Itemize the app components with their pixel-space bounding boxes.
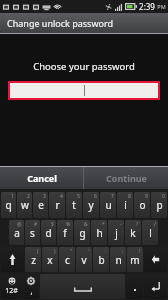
button[interactable]: Cancel: [0, 167, 83, 189]
staticText: ': [88, 248, 90, 255]
staticText: e: [38, 198, 44, 212]
staticText: x: [47, 253, 53, 267]
button[interactable]: [8, 81, 160, 100]
button[interactable]: r: [49, 192, 65, 218]
button[interactable]: u: [100, 192, 116, 218]
button[interactable]: t: [66, 192, 82, 218]
staticText: 7: [111, 193, 114, 200]
button[interactable]: e: [33, 192, 48, 218]
staticText: d: [45, 226, 52, 240]
staticText: y: [88, 198, 94, 212]
staticText: a: [14, 226, 20, 240]
staticText: (: [37, 248, 39, 255]
button[interactable]: Space: [40, 274, 125, 299]
staticText: 6: [94, 193, 97, 200]
staticText: 12#: [5, 286, 18, 296]
button[interactable]: v: [76, 247, 92, 272]
button[interactable]: Symbols and emoji: [1, 274, 21, 299]
staticText: !: [139, 248, 141, 255]
button[interactable]: s: [25, 220, 40, 245]
staticText: Continue: [106, 172, 147, 184]
staticText: ?: [136, 221, 139, 228]
staticText: g: [79, 226, 86, 240]
staticText: Change unlock password: [7, 17, 113, 29]
button[interactable]: o: [134, 192, 150, 218]
staticText: 1: [11, 193, 14, 200]
button[interactable]: l: [142, 220, 158, 245]
button[interactable]: Enter: [144, 274, 167, 299]
button[interactable]: Keyboard settings: [22, 274, 39, 299]
button[interactable]: h: [91, 220, 107, 245]
staticText: 5: [77, 193, 80, 200]
staticText: z: [31, 253, 36, 267]
button[interactable]: d: [41, 220, 56, 245]
staticText: 4: [60, 193, 63, 200]
staticText: k: [130, 226, 136, 240]
staticText: j: [115, 226, 118, 240]
staticText: h: [96, 226, 103, 240]
staticText: :: [105, 248, 107, 255]
staticText: -: [120, 221, 122, 228]
staticText: p: [156, 198, 163, 212]
staticText: c: [65, 253, 70, 267]
staticText: u: [105, 198, 112, 212]
button[interactable]: j: [108, 220, 124, 245]
staticText: ;: [122, 248, 124, 255]
staticText: ,: [30, 285, 33, 296]
staticText: 8: [128, 193, 131, 200]
button[interactable]: k: [125, 220, 141, 245]
staticText: #: [34, 221, 38, 228]
button[interactable]: i: [117, 192, 133, 218]
staticText: 0: [162, 193, 165, 200]
button[interactable]: [126, 274, 143, 299]
button[interactable]: Continue: [84, 167, 168, 189]
staticText: Cancel: [27, 172, 57, 184]
button[interactable]: q: [1, 192, 16, 218]
staticText: PM: [157, 3, 166, 10]
staticText: ): [54, 248, 56, 255]
staticText: 2: [27, 193, 30, 200]
staticText: 2:39: [139, 1, 155, 12]
staticText: 3: [43, 193, 46, 200]
staticText: *: [102, 221, 105, 228]
staticText: r: [55, 198, 60, 212]
button[interactable]: w: [17, 192, 32, 218]
button[interactable]: g: [74, 220, 90, 245]
staticText: $: [51, 221, 54, 228]
button[interactable]: n: [110, 247, 126, 272]
staticText: %: [66, 221, 71, 228]
staticText: /: [154, 221, 156, 228]
staticText: Choose your password: [33, 60, 135, 73]
staticText: i: [124, 198, 127, 212]
staticText: q: [5, 198, 12, 212]
button[interactable]: a: [9, 220, 24, 245]
staticText: w: [21, 198, 29, 212]
staticText: l: [149, 226, 152, 240]
staticText: 9: [145, 193, 148, 200]
button[interactable]: p: [151, 192, 167, 218]
button[interactable]: c: [59, 247, 75, 272]
button[interactable]: y: [83, 192, 99, 218]
staticText: b: [98, 253, 105, 267]
button[interactable]: Backspace: [144, 247, 167, 272]
staticText: @: [17, 221, 22, 228]
staticText: ": [70, 248, 73, 255]
staticText: f: [63, 226, 67, 240]
button[interactable]: x: [42, 247, 58, 272]
staticText: s: [30, 226, 35, 240]
staticText: o: [139, 198, 146, 212]
button[interactable]: b: [93, 247, 109, 272]
button[interactable]: m: [127, 247, 143, 272]
staticText: t: [72, 198, 76, 212]
button[interactable]: Shift: [1, 247, 24, 272]
staticText: m: [130, 253, 140, 267]
button[interactable]: z: [25, 247, 41, 272]
staticText: v: [81, 253, 87, 267]
staticText: n: [115, 253, 122, 267]
staticText: &: [84, 221, 88, 228]
button[interactable]: f: [57, 220, 73, 245]
